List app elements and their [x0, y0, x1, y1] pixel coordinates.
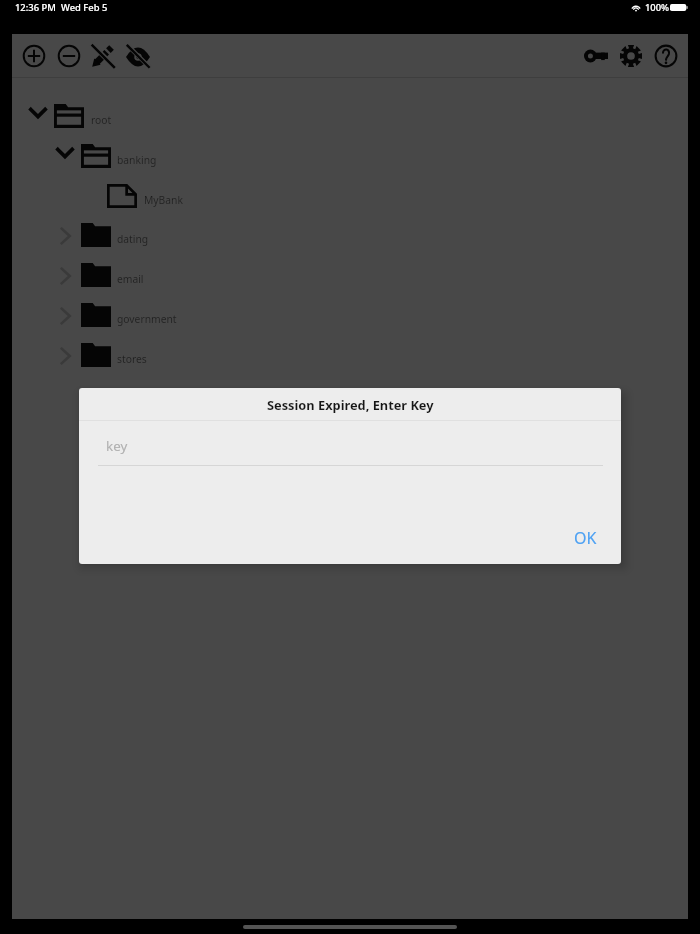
staticText: stores — [117, 352, 147, 366]
button[interactable]: Remove entry — [47, 34, 91, 78]
staticText: OK — [574, 527, 597, 549]
button[interactable]: Master key — [574, 34, 618, 78]
button[interactable]: dating — [12, 216, 688, 256]
staticText: key — [106, 437, 128, 455]
button[interactable]: key — [98, 429, 603, 466]
button[interactable]: banking — [12, 137, 688, 177]
staticText: Wed Feb 5 — [61, 1, 108, 14]
staticText: government — [117, 312, 177, 326]
staticText: dating — [117, 232, 149, 246]
button[interactable]: Help — [644, 34, 688, 78]
button[interactable]: Disable editing — [81, 34, 125, 78]
staticText: 100% — [645, 1, 670, 14]
staticText: 12:36 PM — [15, 1, 56, 14]
button[interactable]: root — [12, 97, 688, 137]
button[interactable]: email — [12, 256, 688, 296]
staticText: root — [91, 113, 112, 127]
button[interactable]: government — [12, 296, 688, 336]
staticText: MyBank — [144, 193, 183, 207]
button[interactable]: Settings — [609, 34, 653, 78]
staticText: email — [117, 272, 144, 286]
button[interactable]: OK — [565, 525, 605, 551]
button[interactable]: Hide passwords — [116, 34, 160, 78]
button[interactable]: stores — [12, 336, 688, 376]
staticText: banking — [117, 153, 157, 167]
button[interactable]: Add entry — [12, 34, 56, 78]
button[interactable]: MyBank — [12, 177, 688, 217]
staticText: Session Expired, Enter Key — [267, 396, 434, 413]
